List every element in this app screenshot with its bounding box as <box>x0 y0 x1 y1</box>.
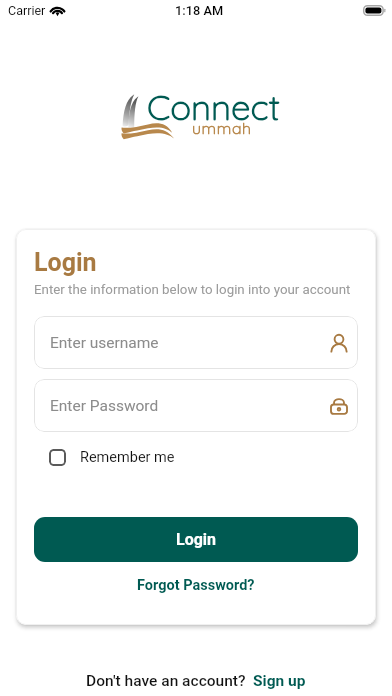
staticText: Carrier <box>8 3 46 18</box>
staticText: Connect <box>147 85 280 129</box>
other: Password <box>330 397 348 415</box>
staticText: Don't have an account? <box>86 672 246 690</box>
staticText: Remember me <box>80 449 175 466</box>
other: Battery <box>363 5 386 16</box>
staticText: Enter username <box>50 334 330 352</box>
staticText: 1:18 AM <box>175 3 224 18</box>
staticText: ummah <box>192 118 252 138</box>
button[interactable]: Login <box>34 517 358 562</box>
button[interactable]: Enter username <box>34 316 358 369</box>
button[interactable]: Sign up <box>253 672 306 690</box>
staticText: Login <box>34 248 97 277</box>
button[interactable]: Remember me <box>34 446 175 469</box>
staticText: Enter the information below to login int… <box>34 282 351 298</box>
staticText: Login <box>176 530 217 549</box>
button[interactable]: Enter Password <box>34 379 358 432</box>
button[interactable]: Forgot Password? <box>133 573 259 598</box>
other: Wi-Fi <box>51 5 64 16</box>
other: Username <box>330 334 348 352</box>
staticText: Enter Password <box>50 397 330 415</box>
